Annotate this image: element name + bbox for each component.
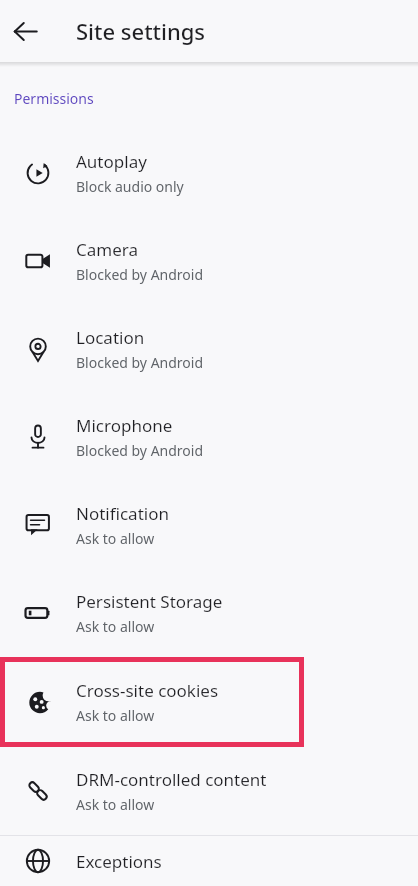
button[interactable]: Microphone bbox=[0, 393, 418, 481]
button[interactable]: Exceptions bbox=[0, 836, 418, 886]
staticText: Blocked by Android bbox=[76, 441, 204, 460]
staticText: Persistent Storage bbox=[76, 590, 223, 613]
staticText: Site settings bbox=[76, 16, 206, 46]
button[interactable]: Persistent Storage bbox=[0, 569, 418, 657]
button[interactable]: Location bbox=[0, 305, 418, 393]
staticText: Permissions bbox=[14, 89, 94, 108]
button[interactable]: Notification bbox=[0, 481, 418, 569]
staticText: Camera bbox=[76, 238, 138, 261]
button[interactable]: DRM-controlled content bbox=[0, 747, 418, 835]
staticText: Microphone bbox=[76, 414, 173, 437]
staticText: Ask to allow bbox=[76, 529, 155, 548]
staticText: Blocked by Android bbox=[76, 265, 204, 284]
staticText: Location bbox=[76, 326, 145, 349]
staticText: Blocked by Android bbox=[76, 353, 204, 372]
button[interactable]: Back bbox=[4, 10, 46, 52]
staticText: Cross-site cookies bbox=[76, 679, 219, 702]
staticText: Ask to allow bbox=[76, 795, 155, 814]
staticText: Block audio only bbox=[76, 177, 184, 196]
button[interactable]: Cross-site cookies bbox=[5, 662, 299, 742]
button[interactable]: Camera bbox=[0, 217, 418, 305]
staticText: Ask to allow bbox=[76, 617, 155, 636]
staticText: Ask to allow bbox=[76, 706, 155, 725]
button[interactable]: Autoplay bbox=[0, 129, 418, 217]
staticText: Notification bbox=[76, 502, 169, 525]
staticText: Autoplay bbox=[76, 150, 147, 173]
staticText: DRM-controlled content bbox=[76, 768, 267, 791]
staticText: Exceptions bbox=[76, 850, 162, 873]
